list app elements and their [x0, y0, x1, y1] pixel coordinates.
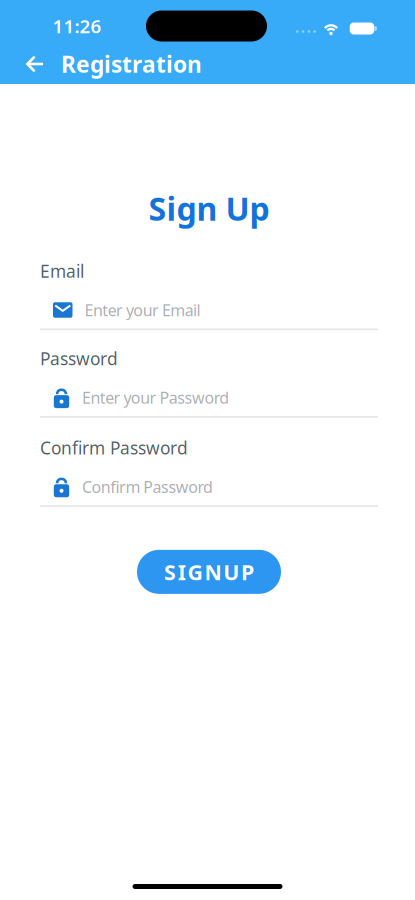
- staticText: Registration: [61, 49, 202, 79]
- staticText: 11:26: [52, 14, 101, 38]
- staticText: Enter your Email: [84, 299, 200, 321]
- staticText: Enter your Password: [82, 387, 229, 408]
- staticText: Sign Up: [148, 187, 269, 229]
- staticText: Password: [40, 347, 118, 370]
- button[interactable]: Enter your Password: [40, 379, 378, 418]
- staticText: Confirm Password: [40, 436, 188, 459]
- staticText: Confirm Password: [82, 476, 213, 497]
- button[interactable]: Back: [26, 55, 44, 73]
- button[interactable]: Enter your Email: [40, 291, 378, 330]
- button[interactable]: SIGNUP: [137, 550, 281, 594]
- staticText: SIGNUP: [164, 558, 254, 586]
- staticText: Email: [40, 259, 84, 282]
- button[interactable]: Confirm Password: [40, 468, 378, 507]
